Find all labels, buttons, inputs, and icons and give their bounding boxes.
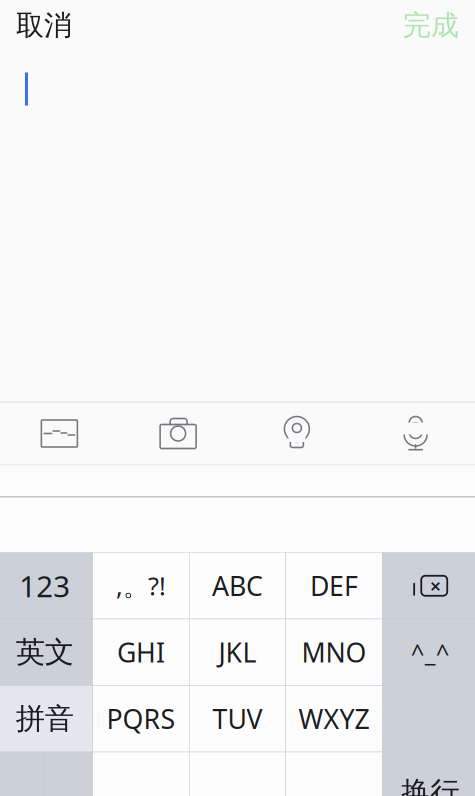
staticText: ABC bbox=[212, 568, 263, 603]
staticText: 123 bbox=[19, 566, 70, 605]
button[interactable]: ABC bbox=[189, 552, 286, 619]
staticText: 完成 bbox=[403, 8, 459, 43]
staticText: GHI bbox=[117, 634, 165, 670]
button[interactable]: JKL bbox=[189, 619, 286, 685]
staticText: 取消 bbox=[16, 8, 72, 43]
staticText: × bbox=[430, 572, 441, 599]
staticText: JKL bbox=[218, 634, 256, 670]
button[interactable]: 拍照 bbox=[119, 402, 238, 464]
button[interactable]: 删除 bbox=[382, 552, 475, 619]
button[interactable]: ,。?! bbox=[93, 552, 189, 619]
staticText: WXYZ bbox=[298, 701, 369, 736]
button[interactable]: 拼音 bbox=[0, 685, 93, 752]
button[interactable]: 英文 bbox=[0, 619, 93, 685]
staticText: 拼音 bbox=[16, 701, 74, 737]
button[interactable]: 换行 bbox=[382, 685, 475, 796]
staticText: 英文 bbox=[16, 634, 74, 670]
button[interactable]: 完成 bbox=[391, 0, 471, 51]
staticText: ,。?! bbox=[116, 569, 166, 603]
button[interactable]: 照片 bbox=[0, 402, 119, 464]
button[interactable]: PQRS bbox=[93, 685, 189, 752]
staticText: PQRS bbox=[106, 701, 175, 736]
staticText: ^_^ bbox=[411, 636, 450, 668]
button[interactable]: 取消 bbox=[4, 0, 84, 51]
button[interactable]: 位置 bbox=[237, 402, 356, 464]
staticText: 换行 bbox=[401, 774, 459, 796]
button[interactable]: DEF bbox=[286, 552, 382, 619]
staticText: DEF bbox=[310, 568, 358, 603]
button[interactable]: 语音 bbox=[356, 402, 475, 464]
button[interactable]: TUV bbox=[189, 685, 286, 752]
staticText: TUV bbox=[212, 701, 262, 736]
button[interactable]: 123 bbox=[0, 552, 93, 619]
staticText: MNO bbox=[301, 634, 366, 670]
button[interactable]: WXYZ bbox=[286, 685, 382, 752]
button[interactable]: GHI bbox=[93, 619, 189, 685]
button[interactable]: ^_^ bbox=[382, 619, 475, 685]
button[interactable]: MNO bbox=[286, 619, 382, 685]
